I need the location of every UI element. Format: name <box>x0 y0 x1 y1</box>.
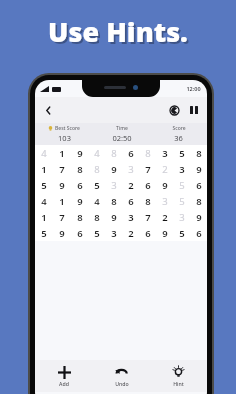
button[interactable]: 2 <box>156 161 173 177</box>
button[interactable]: 9 <box>71 145 88 161</box>
button[interactable]: 3 <box>156 145 173 161</box>
button[interactable]: 5 <box>173 145 190 161</box>
button[interactable]: 8 <box>139 193 156 209</box>
staticText: 9 <box>162 179 168 192</box>
button[interactable]: 9 <box>105 209 122 225</box>
staticText: Use Hints. <box>50 15 190 52</box>
staticText: 7 <box>145 211 151 224</box>
button[interactable]: 9 <box>156 225 173 241</box>
button[interactable]: 8 <box>71 161 88 177</box>
staticText: 3 <box>128 163 134 176</box>
button[interactable]: 7 <box>53 161 71 177</box>
button[interactable]: 5 <box>173 225 190 241</box>
button[interactable]: 8 <box>105 145 122 161</box>
button[interactable]: 4 <box>88 145 105 161</box>
button[interactable]: 3 <box>173 161 190 177</box>
button[interactable]: 8 <box>88 209 105 225</box>
button[interactable]: 5 <box>173 193 190 209</box>
staticText: 103 <box>58 133 71 143</box>
button[interactable]: 8 <box>139 145 156 161</box>
staticText: 8 <box>196 147 202 160</box>
staticText: Hint <box>173 380 184 387</box>
button[interactable]: 1 <box>53 193 71 209</box>
staticText: 5 <box>94 179 100 192</box>
staticText: 9 <box>196 163 202 176</box>
button[interactable]: 7 <box>139 209 156 225</box>
button[interactable]: 3 <box>173 209 190 225</box>
button[interactable]: 3 <box>122 161 139 177</box>
staticText: 5 <box>179 179 185 192</box>
button[interactable]: 8 <box>190 193 207 209</box>
staticText: 6 <box>196 227 202 240</box>
staticText: 3 <box>111 179 117 192</box>
button[interactable]: 2 <box>122 177 139 193</box>
button[interactable]: Pause <box>185 101 203 119</box>
button[interactable]: 5 <box>173 177 190 193</box>
staticText: 3 <box>128 211 134 224</box>
button[interactable]: 6 <box>71 225 88 241</box>
button[interactable]: Theme <box>165 101 183 119</box>
button[interactable]: 8 <box>105 193 122 209</box>
button[interactable]: 6 <box>122 193 139 209</box>
button[interactable]: 8 <box>190 145 207 161</box>
button[interactable]: 3 <box>156 193 173 209</box>
button[interactable]: 2 <box>122 225 139 241</box>
staticText: 2 <box>162 211 168 224</box>
button[interactable]: 1 <box>35 161 53 177</box>
button[interactable]: 5 <box>35 177 53 193</box>
staticText: 6 <box>145 179 151 192</box>
staticText: 12:00 <box>186 85 201 92</box>
button[interactable]: 6 <box>190 225 207 241</box>
staticText: Add <box>59 380 69 387</box>
button[interactable]: 8 <box>88 161 105 177</box>
staticText: 3 <box>162 147 168 160</box>
button[interactable]: 9 <box>53 225 71 241</box>
button[interactable]: 5 <box>35 225 53 241</box>
button[interactable]: 3 <box>105 177 122 193</box>
staticText: 8 <box>145 147 151 160</box>
staticText: 5 <box>41 227 47 240</box>
staticText: 3 <box>111 227 117 240</box>
button[interactable]: 9 <box>53 177 71 193</box>
staticText: 6 <box>77 179 83 192</box>
button[interactable]: 9 <box>105 161 122 177</box>
button[interactable]: 9 <box>156 177 173 193</box>
staticText: 9 <box>111 163 117 176</box>
button[interactable]: Hint <box>150 360 207 392</box>
button[interactable]: 1 <box>53 145 71 161</box>
button[interactable]: 3 <box>105 225 122 241</box>
button[interactable]: 6 <box>190 177 207 193</box>
staticText: 3 <box>179 211 185 224</box>
button[interactable]: 6 <box>139 225 156 241</box>
button[interactable]: 5 <box>88 177 105 193</box>
button[interactable]: Add <box>35 360 93 392</box>
staticText: 4 <box>41 147 47 160</box>
button[interactable]: Back <box>38 100 58 120</box>
staticText: 9 <box>77 195 83 208</box>
button[interactable]: 6 <box>139 177 156 193</box>
staticText: 3 <box>179 163 185 176</box>
button[interactable]: 1 <box>35 209 53 225</box>
button[interactable]: 9 <box>190 161 207 177</box>
button[interactable]: 7 <box>139 161 156 177</box>
button[interactable]: 9 <box>71 193 88 209</box>
button[interactable]: 2 <box>156 209 173 225</box>
staticText: 9 <box>162 227 168 240</box>
button[interactable]: 5 <box>88 225 105 241</box>
button[interactable]: Undo <box>93 360 150 392</box>
button[interactable]: 7 <box>53 209 71 225</box>
staticText: 8 <box>196 195 202 208</box>
button[interactable]: 6 <box>71 177 88 193</box>
staticText: 3 <box>162 195 168 208</box>
button[interactable]: 8 <box>71 209 88 225</box>
staticText: 02:50 <box>112 133 132 143</box>
button[interactable]: 9 <box>190 209 207 225</box>
button[interactable]: 6 <box>122 145 139 161</box>
staticText: 6 <box>77 227 83 240</box>
button[interactable]: 4 <box>35 145 53 161</box>
button[interactable]: 4 <box>35 193 53 209</box>
staticText: 8 <box>94 211 100 224</box>
staticText: Use Hints. <box>48 13 188 50</box>
button[interactable]: 4 <box>88 193 105 209</box>
button[interactable]: 3 <box>122 209 139 225</box>
